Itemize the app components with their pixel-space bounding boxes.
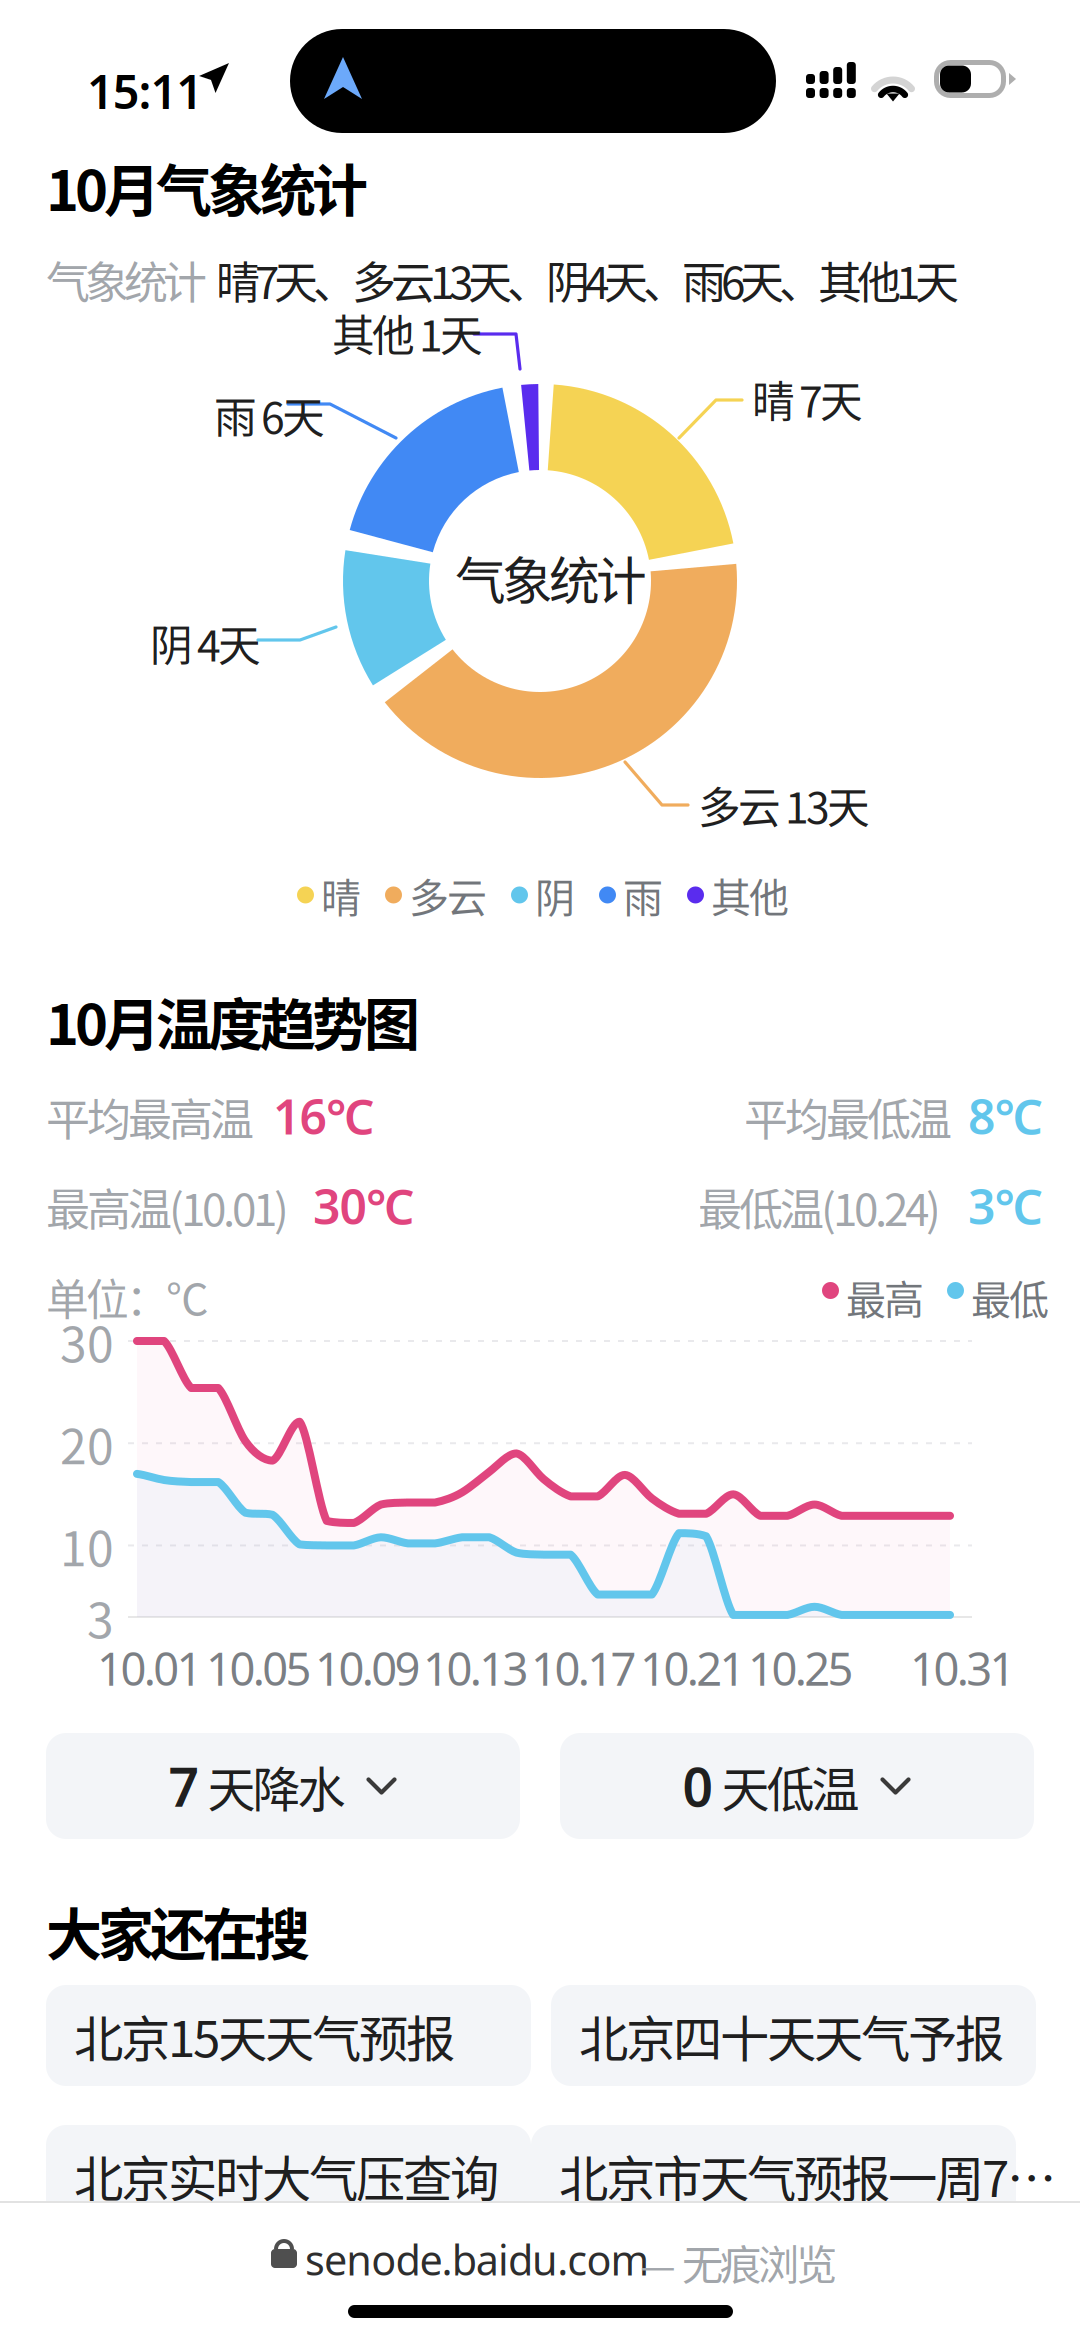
button[interactable]: 北京市天气预报一周7… (551, 2125, 1036, 2226)
staticText: 北京四十天天气予报 (579, 2000, 1004, 2071)
button[interactable]: 0 (560, 1733, 1034, 1839)
staticText: 10月气象统计 (46, 146, 368, 227)
staticText: 气象统计 (46, 248, 207, 312)
staticText: 平均最低温 (744, 1085, 952, 1149)
staticText: 阴 (535, 866, 575, 924)
staticText: 30 (60, 1306, 114, 1376)
staticText: 15:11 (87, 60, 203, 122)
staticText: 10.05 (206, 1638, 312, 1698)
staticText: 北京实时大气压查询 (74, 2140, 499, 2211)
staticText: 平均最高温 (46, 1085, 254, 1149)
staticText: 阴 4天 (150, 612, 261, 674)
staticText: 16℃ (273, 1084, 374, 1148)
staticText: 10.17 (531, 1638, 637, 1698)
staticText: 晴 7天 (752, 368, 863, 430)
staticText: 8℃ (968, 1084, 1042, 1148)
staticText: 最低 (971, 1268, 1049, 1326)
button[interactable]: 北京15天天气预报 (46, 1985, 531, 2086)
staticText: 10.21 (640, 1638, 746, 1698)
staticText: 其他 1天 (332, 302, 483, 364)
staticText: 20 (60, 1408, 114, 1478)
staticText: 其他 (711, 866, 789, 924)
button[interactable]: 7 (46, 1733, 520, 1839)
staticText: 晴7天、多云13天、阴4天、雨6天、其他1天 (216, 248, 959, 312)
staticText: 7 (168, 1751, 199, 1821)
staticText: 10.13 (423, 1638, 529, 1698)
staticText: 10月温度趋势图 (46, 980, 420, 1061)
staticText: 单位：℃ (46, 1266, 209, 1328)
button[interactable]: 北京实时大气压查询 (46, 2125, 531, 2226)
staticText: 最高 (846, 1268, 924, 1326)
staticText: 天低温 (713, 1751, 859, 1821)
staticText: 气象统计 (455, 541, 647, 614)
staticText: 最低温(10.24) (698, 1175, 941, 1239)
staticText: 大家还在搜 (46, 1890, 310, 1971)
staticText: 无痕浏览 (682, 2232, 837, 2292)
staticText: 10 (60, 1511, 114, 1580)
staticText: 10.01 (97, 1638, 203, 1698)
staticText: 10.25 (748, 1638, 854, 1698)
staticText: 多云 13天 (698, 774, 870, 836)
staticText: 雨 6天 (214, 384, 325, 446)
staticText: senode.baidu.com (305, 2232, 649, 2287)
staticText: 10.31 (910, 1638, 1016, 1698)
staticText: 3℃ (968, 1174, 1042, 1238)
staticText: 30℃ (313, 1174, 414, 1238)
staticText: 北京15天天气预报 (74, 2000, 455, 2071)
staticText: 北京市天气预报一周7… (559, 2140, 1056, 2211)
staticText: 0 (682, 1751, 713, 1821)
staticText: 晴 (321, 866, 361, 924)
staticText: 雨 (623, 866, 663, 924)
button[interactable]: 北京四十天天气予报 (551, 1985, 1036, 2086)
staticText: 3 (87, 1582, 114, 1652)
staticText: 天降水 (199, 1751, 345, 1821)
staticText: 10.09 (315, 1638, 421, 1698)
staticText: 最高温(10.01) (46, 1175, 289, 1239)
staticText: 多云 (409, 866, 487, 924)
staticText: — (640, 2234, 676, 2292)
